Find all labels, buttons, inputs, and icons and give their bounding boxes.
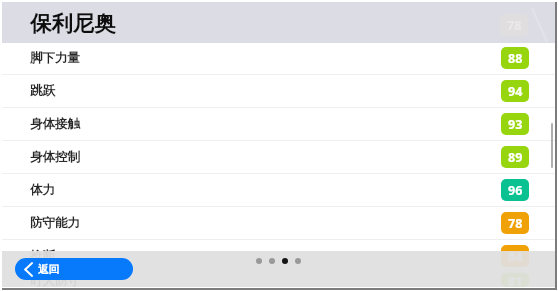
staticText: 防守能力: [30, 215, 80, 231]
staticText: 抢断: [30, 248, 55, 264]
staticText: 88: [508, 50, 523, 67]
button[interactable]: 返回: [15, 258, 133, 280]
staticText: 84: [508, 248, 523, 265]
staticText: 78: [508, 215, 523, 232]
button[interactable]: 抢断: [2, 240, 555, 272]
button[interactable]: 跳跃: [2, 75, 555, 107]
staticText: 81: [508, 273, 523, 287]
staticText: 脚下力量: [30, 50, 80, 66]
staticText: 保利尼奥: [30, 10, 116, 37]
staticText: 89: [508, 149, 523, 166]
button[interactable]: 身体接触: [2, 108, 555, 140]
button[interactable]: 脚下力量: [2, 42, 555, 74]
staticText: 盯人防守: [30, 273, 80, 287]
staticText: 身体控制: [30, 149, 80, 165]
staticText: 94: [508, 83, 523, 100]
staticText: 体力: [30, 182, 55, 198]
staticText: 78: [507, 17, 522, 34]
button[interactable]: 盯人防守: [2, 273, 555, 287]
staticText: 跳跃: [30, 83, 55, 99]
staticText: 返回: [38, 263, 60, 276]
button[interactable]: 体力: [2, 174, 555, 206]
staticText: 96: [508, 182, 523, 199]
staticText: 93: [508, 116, 523, 133]
button[interactable]: 身体控制: [2, 141, 555, 173]
button[interactable]: 防守能力: [2, 207, 555, 239]
staticText: 身体接触: [30, 116, 80, 132]
